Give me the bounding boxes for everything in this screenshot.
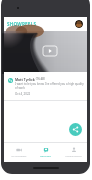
button[interactable]: Play video: [4, 31, 87, 72]
staticText: Matt Tyrlick: [15, 77, 35, 81]
staticText: SHOWREELS: [7, 21, 37, 27]
button[interactable]: NOTIFICATIONS: [60, 143, 87, 162]
staticText: NOTIFICATIONS: [65, 155, 82, 158]
staticText: (16:48): [35, 77, 45, 81]
button[interactable]: Profile: [75, 20, 83, 28]
staticText: MESSAGES: [40, 155, 51, 158]
staticText: Oct 4, 2022: [15, 92, 31, 96]
staticText: I want to let you know I've offered you …: [15, 82, 86, 90]
button[interactable]: MESSAGES: [32, 143, 59, 162]
button[interactable]: Matt Tyrlick: [4, 72, 87, 100]
button[interactable]: Share: [69, 123, 82, 136]
staticText: MY SHOWREEL: [11, 155, 27, 158]
button[interactable]: MY SHOWREEL: [5, 143, 32, 162]
